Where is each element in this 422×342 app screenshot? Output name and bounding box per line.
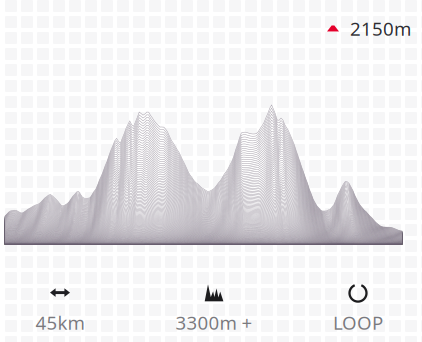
staticText: 3300m + (175, 310, 252, 335)
staticText: LOOP (333, 310, 383, 335)
staticText: 45km (35, 310, 84, 335)
button[interactable]: 3300m + (154, 281, 274, 335)
button[interactable]: LOOP (298, 281, 418, 335)
staticText: 2150m (350, 16, 411, 41)
button[interactable]: 45km (0, 281, 120, 335)
